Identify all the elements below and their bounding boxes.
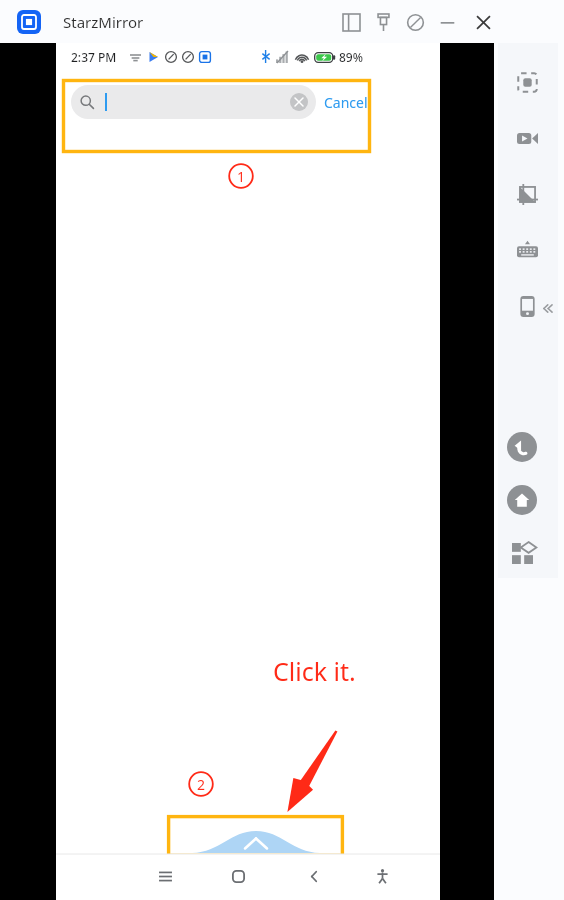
staticText: Cancel — [324, 93, 368, 112]
staticText: 2:37 PM — [71, 49, 117, 65]
button[interactable]: Crop — [512, 179, 542, 209]
staticText: StarzMirror — [63, 12, 144, 32]
button[interactable]: Cancel — [322, 91, 370, 114]
button[interactable]: Collapse — [537, 298, 557, 318]
button[interactable]: Back — [300, 862, 328, 890]
button[interactable]: Device — [512, 291, 542, 321]
button[interactable]: Close — [472, 11, 494, 33]
button[interactable]: Home — [224, 862, 252, 890]
button[interactable]: Home — [507, 485, 537, 515]
button[interactable]: Expand panel — [192, 831, 320, 853]
button[interactable]: Menu — [151, 862, 179, 890]
staticText: 1 — [237, 167, 246, 186]
button[interactable]: Keyboard — [512, 235, 542, 265]
button[interactable]: Layout — [340, 11, 362, 33]
button[interactable]: Rotate — [404, 11, 426, 33]
button[interactable]: Clear — [290, 93, 308, 111]
button[interactable]: Clear — [71, 85, 316, 119]
button[interactable]: Accessibility — [368, 862, 396, 890]
button[interactable]: Back — [507, 432, 537, 462]
button[interactable]: Pin — [372, 11, 394, 33]
staticText: 2 — [197, 775, 206, 794]
button[interactable]: Record — [512, 123, 542, 153]
button[interactable]: Apps — [507, 538, 537, 568]
staticText: 89% — [339, 49, 363, 65]
button[interactable]: Minimize — [436, 11, 458, 33]
staticText: Click it. — [273, 654, 356, 688]
button[interactable]: Screenshot — [512, 67, 542, 97]
